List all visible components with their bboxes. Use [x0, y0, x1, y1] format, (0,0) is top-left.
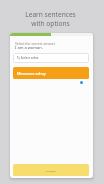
button[interactable]: Mesmaes sahvy [13, 67, 89, 79]
staticText: Select the correct answer [15, 41, 56, 46]
staticText: I am a woman. [15, 45, 43, 50]
staticText: Mesmaes sahvy [17, 71, 46, 76]
staticText: with options [31, 19, 70, 28]
button[interactable]: Hint [80, 81, 83, 84]
staticText: Ty Ezelere sahve. [17, 56, 40, 60]
button[interactable]: Confirm [13, 164, 89, 176]
button[interactable]: Ty Ezelere sahve. [13, 53, 89, 63]
staticText: Learn sentences [25, 10, 76, 19]
staticText: Confirm [46, 169, 56, 172]
